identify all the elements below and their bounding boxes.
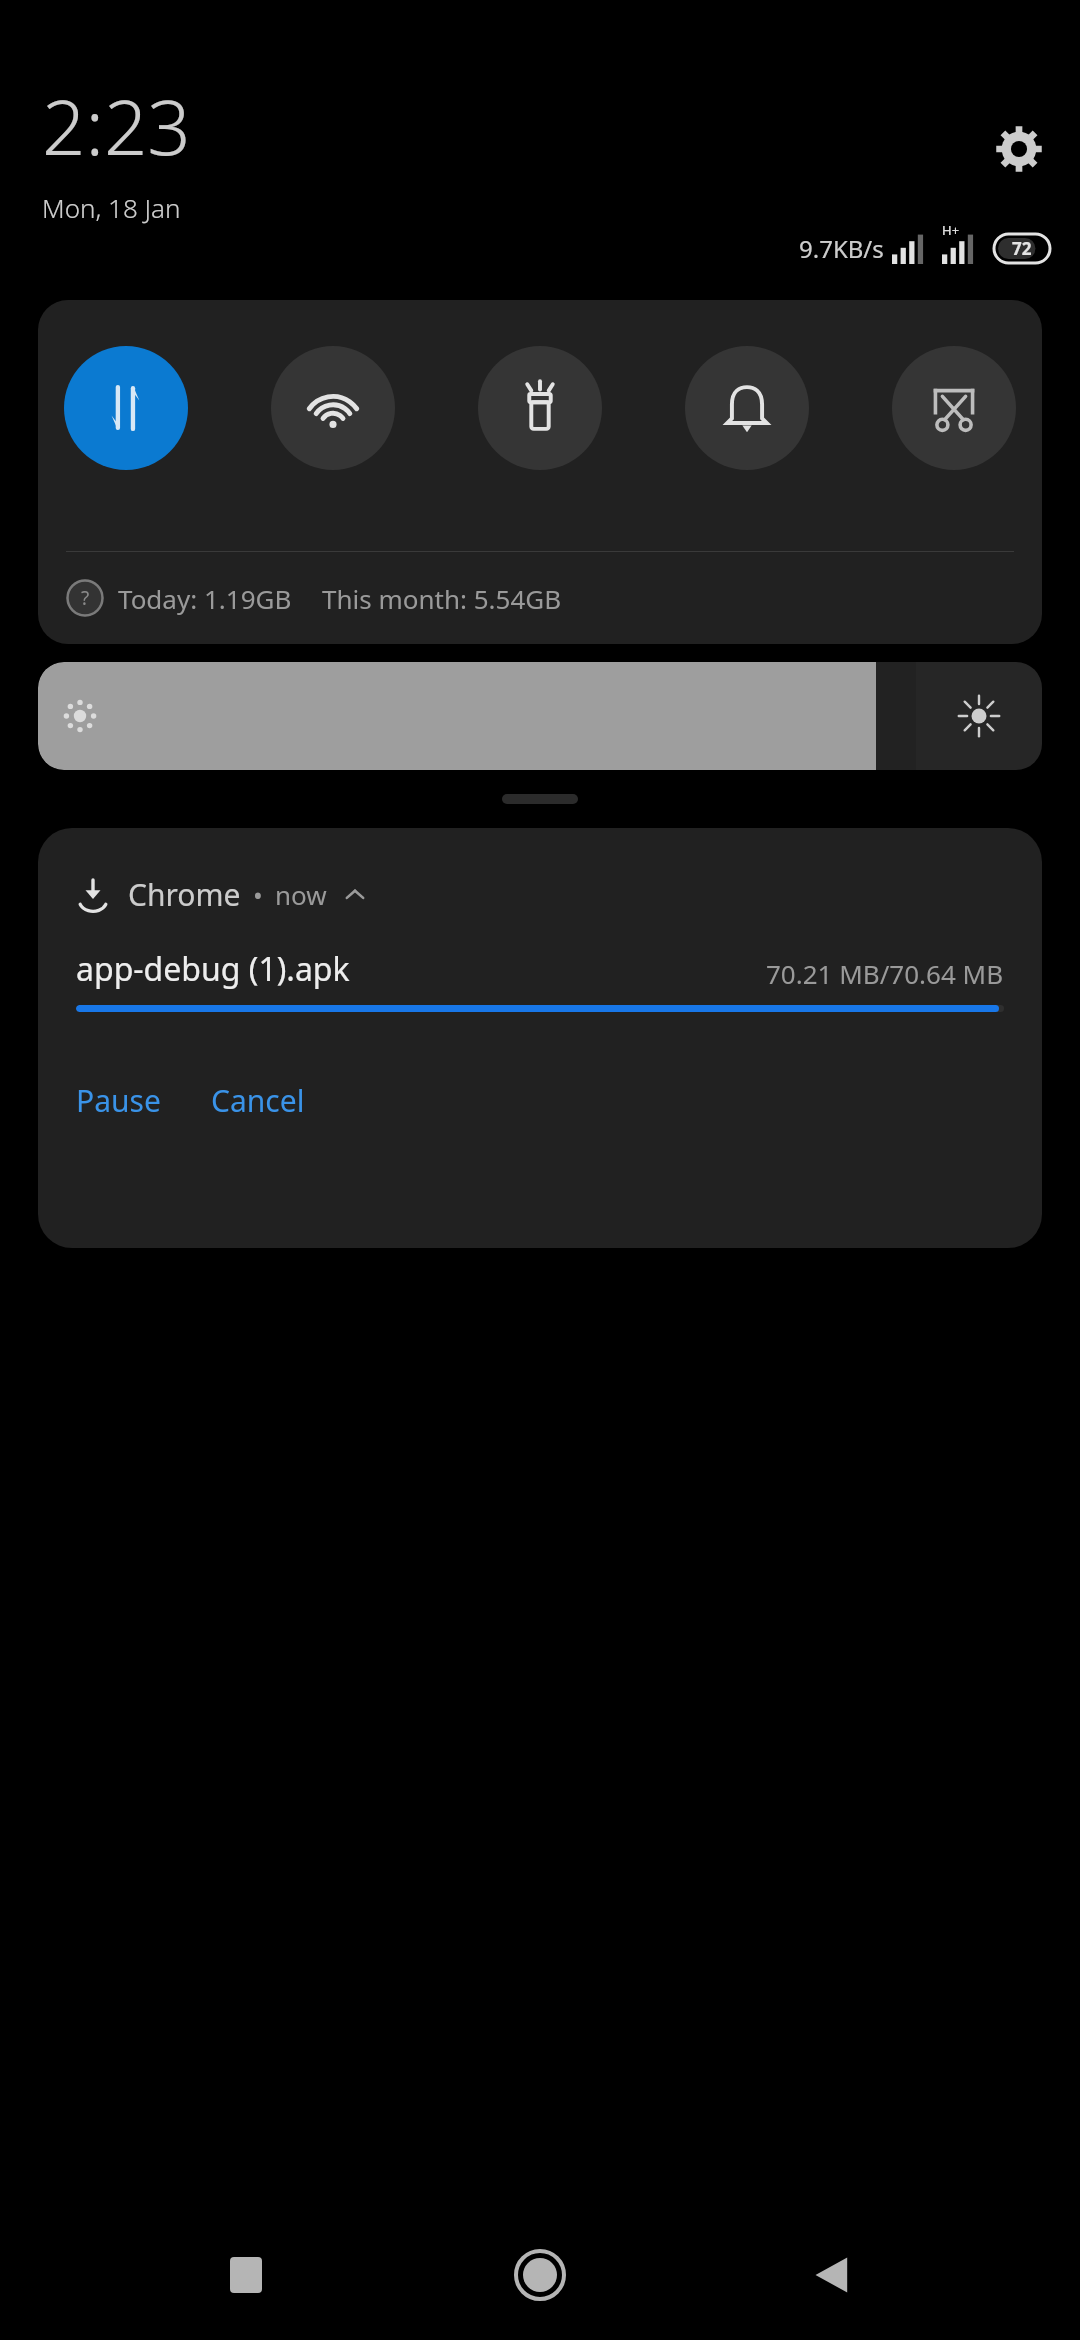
staticText: Cancel [211, 1080, 305, 1121]
staticText: • [253, 877, 263, 912]
button[interactable]: Pause [76, 1072, 187, 1129]
staticText: H+ [942, 221, 960, 239]
staticText: app-debug (1).apk [76, 947, 350, 991]
button[interactable]: Home [492, 2227, 588, 2323]
staticText: 72 [1012, 237, 1032, 260]
button[interactable]: Chrome [38, 828, 1042, 1248]
staticText: Today: 1.19GB [118, 581, 292, 616]
staticText: 70.21 MB/70.64 MB [766, 956, 1004, 991]
button[interactable]: Flashlight [478, 346, 602, 470]
button[interactable]: Auto brightness [916, 662, 1042, 770]
button[interactable]: Screenshot [892, 346, 1016, 470]
staticText: Mon, 18 Jan [42, 190, 181, 225]
button[interactable]: Brightness [38, 662, 916, 770]
staticText: ? [81, 585, 90, 611]
staticText: This month: 5.54GB [322, 581, 562, 616]
staticText: now [275, 877, 327, 912]
button[interactable]: Mobile data [64, 346, 188, 470]
staticText: Chrome [128, 874, 241, 915]
button[interactable]: Recents [198, 2227, 294, 2323]
button[interactable]: ? [38, 552, 1042, 644]
button[interactable]: Wi-Fi [271, 346, 395, 470]
button[interactable]: Back [786, 2227, 882, 2323]
staticText: 9.7KB/s [799, 232, 884, 265]
button[interactable]: Do not disturb [685, 346, 809, 470]
button[interactable]: Settings [988, 118, 1050, 180]
button[interactable]: Cancel [211, 1072, 331, 1129]
staticText: Pause [76, 1080, 161, 1121]
staticText: 2:23 [42, 74, 191, 178]
